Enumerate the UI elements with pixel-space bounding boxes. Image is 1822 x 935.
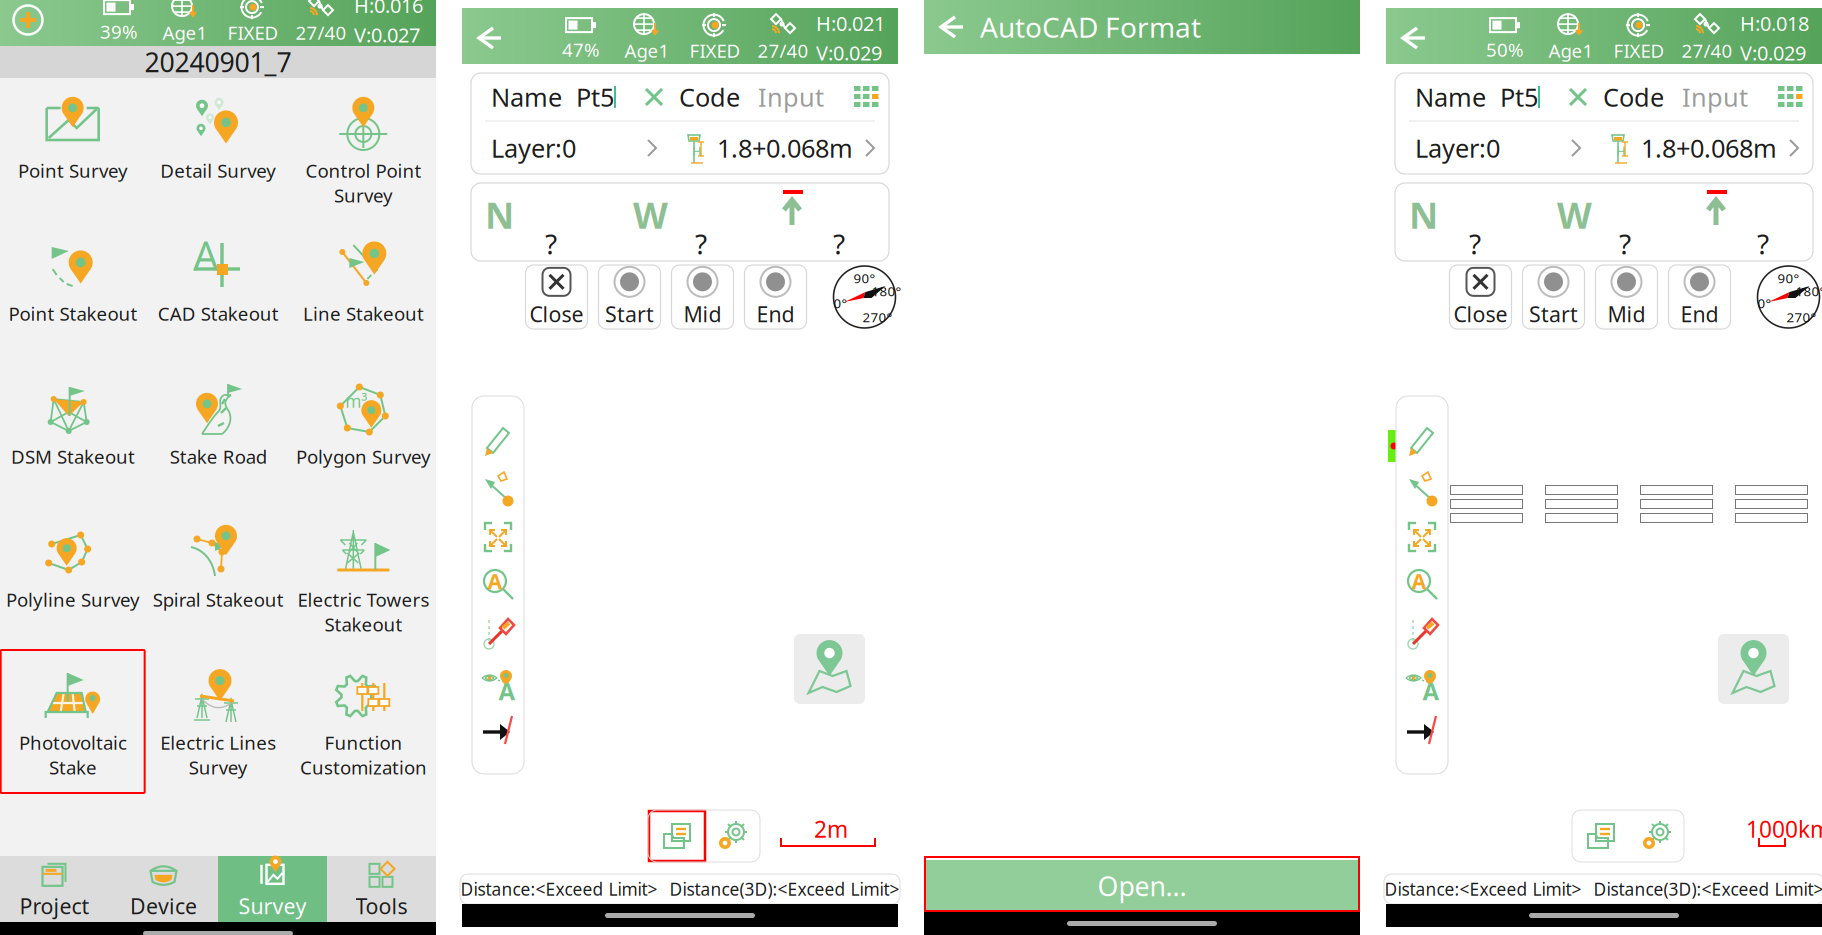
button[interactable]: Photovoltaic Stake: [1, 650, 145, 793]
button[interactable]: Close: [1449, 265, 1511, 329]
staticText: H: [692, 143, 701, 159]
staticText: CAD Stakeout: [157, 301, 278, 326]
button[interactable]: Close: [525, 265, 587, 329]
staticText: Control Point Survey: [305, 158, 421, 208]
staticText: N: [1409, 191, 1438, 239]
button[interactable]: Draw: [472, 417, 524, 465]
button[interactable]: Start: [1522, 265, 1584, 329]
staticText: Distance:<Exceed Limit>: [1384, 877, 1581, 900]
button[interactable]: Zoom to extents: [472, 513, 524, 561]
button[interactable]: Layers: [1572, 810, 1630, 862]
button[interactable]: Toggle labels: [472, 657, 524, 705]
staticText: End: [756, 300, 794, 328]
staticText: Distance(3D):<Exceed Limit>: [669, 877, 899, 900]
staticText: Layer:0: [491, 131, 576, 165]
button[interactable]: Line Stakeout: [291, 221, 435, 364]
button[interactable]: Control Point Survey: [291, 78, 435, 221]
button[interactable]: A: [146, 221, 290, 364]
button[interactable]: Add: [0, 0, 56, 48]
button[interactable]: H: [671, 122, 889, 174]
button[interactable]: Stake point: [472, 609, 524, 657]
button[interactable]: Point Stakeout: [1, 221, 145, 364]
button[interactable]: Code list: [1769, 82, 1813, 112]
staticText: A: [193, 228, 219, 281]
staticText: Electric Towers Stakeout: [297, 587, 429, 637]
staticText: Stake Road: [169, 444, 266, 469]
staticText: AutoCAD Format: [980, 8, 1201, 46]
staticText: Detail Survey: [160, 158, 276, 183]
staticText: A: [1422, 675, 1439, 707]
staticText: Device: [130, 892, 197, 920]
staticText: Polygon Survey: [296, 444, 431, 469]
staticText: Age1: [1548, 38, 1593, 63]
button[interactable]: Layers: [648, 810, 706, 862]
button[interactable]: Stake Road: [146, 364, 290, 507]
staticText: End: [1680, 300, 1718, 328]
button[interactable]: End: [744, 265, 806, 329]
staticText: Start: [1529, 300, 1578, 328]
staticText: Function Customization: [300, 730, 427, 780]
staticText: H:0.018: [1740, 10, 1809, 36]
button[interactable]: Code list: [845, 82, 889, 112]
button[interactable]: Stake point: [1396, 609, 1448, 657]
button[interactable]: Back: [1386, 10, 1442, 66]
button[interactable]: Function Customization: [291, 650, 435, 793]
staticText: FIXED: [1613, 38, 1664, 63]
button[interactable]: Device: [109, 856, 218, 922]
button[interactable]: Clear: [1561, 82, 1595, 112]
staticText: 2m: [814, 814, 848, 844]
button[interactable]: Toggle labels: [1396, 657, 1448, 705]
button[interactable]: Mid: [1595, 265, 1657, 329]
button[interactable]: Electric Lines Survey: [146, 650, 290, 793]
button[interactable]: DSM Stakeout: [1, 364, 145, 507]
staticText: A: [1411, 567, 1426, 595]
button[interactable]: Offset line: [472, 705, 524, 753]
staticText: Close: [1453, 300, 1507, 328]
staticText: 0°: [833, 294, 847, 312]
button[interactable]: Draw: [1396, 417, 1448, 465]
staticText: ?: [545, 225, 557, 262]
button[interactable]: Settings: [1630, 810, 1684, 862]
staticText: V:0.027: [354, 21, 420, 48]
staticText: V:0.029: [1740, 39, 1806, 66]
button[interactable]: Electric Towers Stakeout: [291, 507, 435, 650]
button[interactable]: Point Survey: [1, 78, 145, 221]
button[interactable]: Polyline Survey: [1, 507, 145, 650]
button[interactable]: Layer:0: [471, 122, 671, 174]
button[interactable]: Zoom to text: [1396, 561, 1448, 609]
staticText: N: [485, 191, 514, 239]
button[interactable]: Select: [472, 465, 524, 513]
staticText: H:0.021: [816, 10, 885, 36]
button[interactable]: End: [1668, 265, 1730, 329]
button[interactable]: Layer:0: [1395, 122, 1595, 174]
button[interactable]: Tools: [327, 856, 436, 922]
staticText: Electric Lines Survey: [160, 730, 276, 780]
staticText: Distance:<Exceed Limit>: [460, 877, 657, 900]
staticText: FIXED: [227, 20, 278, 45]
button[interactable]: Project: [0, 856, 109, 922]
button[interactable]: Settings: [706, 810, 760, 862]
button[interactable]: H: [1595, 122, 1813, 174]
button[interactable]: Back: [462, 10, 518, 66]
staticText: 50%: [1486, 37, 1524, 62]
staticText: FIXED: [689, 38, 740, 63]
staticText: 270°: [862, 308, 892, 326]
button[interactable]: Clear: [637, 82, 671, 112]
staticText: W: [1557, 191, 1592, 239]
button[interactable]: Zoom to text: [472, 561, 524, 609]
button[interactable]: m³: [291, 364, 435, 507]
button[interactable]: Start: [598, 265, 660, 329]
button[interactable]: Zoom to extents: [1396, 513, 1448, 561]
staticText: Open...: [1097, 868, 1186, 904]
button[interactable]: Spiral Stakeout: [146, 507, 290, 650]
button[interactable]: Detail Survey: [146, 78, 290, 221]
staticText: Photovoltaic Stake: [19, 730, 127, 780]
button[interactable]: Select: [1396, 465, 1448, 513]
button[interactable]: Mid: [671, 265, 733, 329]
button[interactable]: Survey: [218, 856, 327, 922]
button[interactable]: Offset line: [1396, 705, 1448, 753]
button[interactable]: Back: [924, 0, 980, 54]
staticText: 27/40: [295, 20, 346, 45]
button[interactable]: Open...: [924, 860, 1360, 912]
staticText: Input: [1682, 80, 1748, 114]
